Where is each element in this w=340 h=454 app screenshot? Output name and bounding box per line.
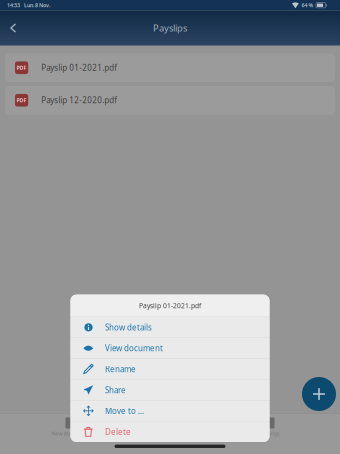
button[interactable]: PDF [0,53,340,82]
button[interactable]: New document [20,415,120,439]
staticText: New document [51,430,88,437]
button[interactable]: Settings [220,415,320,439]
staticText: View document [105,343,163,353]
button[interactable]: View document [70,338,269,358]
staticText: Payslip 01-2021.pdf [139,301,201,310]
button[interactable]: Show details [70,317,269,337]
staticText: Show details [105,322,152,333]
staticText: Payslip 12-2020.pdf [41,95,117,105]
staticText: PDF [17,97,27,104]
button[interactable]: My documents [120,415,220,439]
button[interactable]: Back [0,10,29,45]
button[interactable]: Delete [70,422,269,442]
staticText: Payslips [153,22,187,34]
staticText: PDF [17,64,27,71]
staticText: Rename [105,364,136,374]
button[interactable]: Add document [302,377,336,411]
staticText: Payslip 01-2021.pdf [41,62,117,73]
button[interactable]: Rename [70,359,269,379]
staticText: Lun. 8 Nov. [24,2,50,9]
staticText: 64 % [301,2,313,9]
button[interactable]: Share [70,380,269,400]
staticText: Share [105,385,126,395]
staticText: Delete [105,426,131,437]
button[interactable]: PDF [0,86,340,114]
button[interactable]: Move to ... [70,401,269,421]
staticText: 14:33 [7,2,20,9]
staticText: Settings [260,430,280,437]
staticText: Move to ... [105,406,144,416]
